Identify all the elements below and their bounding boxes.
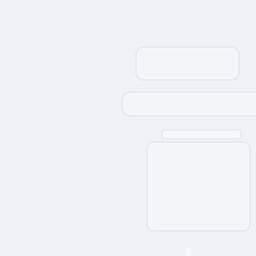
button[interactable]: Handle (185, 247, 192, 256)
button[interactable]: Search field (136, 47, 239, 80)
button[interactable]: Row (122, 92, 256, 116)
